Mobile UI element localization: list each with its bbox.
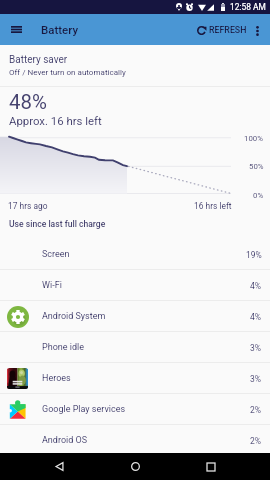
staticText: 50% <box>249 162 264 171</box>
staticText: Phone idle <box>42 342 84 353</box>
button[interactable]: Android System <box>0 301 270 332</box>
staticText: Off / Never turn on automatically <box>9 68 126 77</box>
staticText: Android System <box>42 311 106 322</box>
staticText: Google Play services <box>42 404 126 415</box>
button[interactable]: Screen <box>0 239 270 270</box>
staticText: 19% <box>246 250 262 260</box>
staticText: Heroes <box>42 373 71 384</box>
button[interactable]: More options <box>248 21 267 40</box>
button[interactable]: Home <box>118 453 152 480</box>
staticText: 3% <box>250 343 262 353</box>
staticText: 16 hrs left <box>194 201 232 211</box>
staticText: 2% <box>250 405 262 415</box>
staticText: Battery saver <box>9 54 68 66</box>
button[interactable]: Back <box>42 453 76 480</box>
staticText: Battery <box>41 23 79 36</box>
staticText: 0% <box>253 191 264 200</box>
staticText: 100% <box>244 134 263 143</box>
button[interactable]: Google Play services <box>0 394 270 425</box>
staticText: 4% <box>250 312 262 322</box>
button[interactable]: Recent apps <box>194 453 228 480</box>
staticText: REFRESH <box>209 25 247 35</box>
staticText: Android OS <box>42 435 88 446</box>
staticText: 2% <box>250 436 262 446</box>
staticText: 4% <box>250 281 262 291</box>
button[interactable]: Phone idle <box>0 332 270 363</box>
staticText: Use since last full charge <box>9 219 106 229</box>
staticText: 12:58 AM <box>230 2 266 12</box>
button[interactable]: Android OS <box>0 425 270 456</box>
button[interactable]: Open navigation drawer <box>5 19 27 41</box>
staticText: 17 hrs ago <box>8 201 48 211</box>
staticText: Screen <box>42 249 70 260</box>
staticText: Wi-Fi <box>42 280 62 291</box>
button[interactable]: Battery saver <box>0 45 270 86</box>
staticText: 3% <box>250 374 262 384</box>
button[interactable]: REFRESH <box>189 20 248 40</box>
staticText: Approx. 16 hrs left <box>9 114 102 127</box>
button[interactable]: Wi-Fi <box>0 270 270 301</box>
button[interactable]: Heroes <box>0 363 270 394</box>
staticText: 48% <box>9 90 47 114</box>
